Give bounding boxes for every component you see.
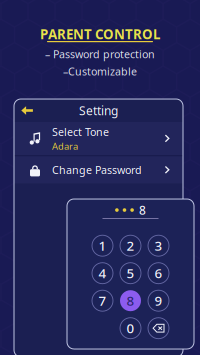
button[interactable]: 3 — [144, 232, 172, 259]
staticText: 8 — [126, 292, 134, 309]
button[interactable]: 5 — [116, 259, 144, 287]
button[interactable]: Delete — [144, 314, 172, 342]
staticText: 2 — [126, 237, 134, 254]
button[interactable]: Select Tone — [14, 122, 183, 155]
button[interactable]: Change Password — [14, 156, 183, 183]
staticText: 4 — [98, 264, 106, 282]
staticText: 0 — [126, 319, 134, 337]
button[interactable]: 2 — [116, 232, 144, 259]
button[interactable]: 7 — [88, 287, 116, 314]
button[interactable]: 1 — [88, 232, 116, 259]
staticText: 3 — [154, 237, 162, 254]
staticText: Select Tone — [52, 125, 109, 139]
button[interactable]: 9 — [144, 287, 172, 314]
button[interactable]: 0 — [116, 314, 144, 342]
staticText: Setting — [79, 102, 118, 118]
staticText: –Customizable — [63, 64, 137, 78]
staticText: 6 — [154, 264, 162, 282]
staticText: 7 — [98, 292, 106, 309]
staticText: 8 — [139, 202, 146, 218]
staticText: 5 — [126, 264, 134, 282]
button[interactable]: 4 — [88, 259, 116, 287]
button[interactable]: 8 — [116, 287, 144, 314]
staticText: – Password protection — [45, 47, 155, 61]
button[interactable]: 6 — [144, 259, 172, 287]
staticText: 1 — [98, 237, 106, 254]
button[interactable]: Back — [14, 99, 40, 121]
staticText: Adara — [52, 140, 78, 152]
staticText: PARENT CONTROL — [40, 25, 160, 43]
staticText: 9 — [154, 292, 162, 309]
staticText: Change Password — [52, 163, 142, 177]
